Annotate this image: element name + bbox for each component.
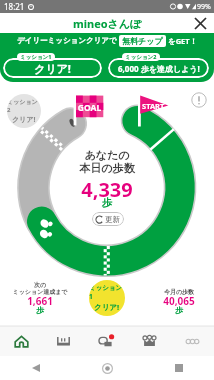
staticText: クリア! [12,115,36,125]
button[interactable]: ミッション1 [89,280,125,316]
button[interactable]: More [171,326,214,356]
button[interactable]: 6,000 歩を達成しよう! [108,58,209,78]
staticText: GOAL [76,102,103,114]
button[interactable]: Information [191,92,207,108]
staticText: 6,000 歩を達成しよう! [118,63,200,74]
staticText: 歩 [5,305,75,315]
staticText: 歩 [56,196,158,209]
staticText: 今月の歩数 [144,288,214,296]
staticText: 4,339 [56,176,158,203]
staticText: をGET！ [168,36,198,46]
staticText: ミッション2 [125,53,157,61]
staticText: 18:21 [4,1,25,12]
button[interactable]: クリア! [3,58,102,78]
staticText: 無料チップ [122,36,163,46]
staticText: クリア! [94,302,120,312]
staticText: ミッション達成まで [5,288,75,296]
other: Home [102,363,113,374]
button[interactable]: Home [0,326,42,356]
staticText: 歩 [144,305,214,315]
staticText: START [142,101,165,111]
staticText: 次の [5,281,75,289]
staticText: ミッション1 [89,284,125,301]
staticText: 40,065 [144,294,214,308]
staticText: 1,661 [5,294,75,308]
staticText: 99% [197,2,211,12]
other: Back [32,364,40,372]
button[interactable]: Chat [85,326,128,356]
staticText: ミッション2 [7,98,41,114]
staticText: クリア! [34,61,71,76]
button[interactable]: Rewards [128,326,171,356]
staticText: 更新 [105,215,120,224]
staticText: 本日の歩数 [56,161,158,175]
button[interactable]: Data [42,326,85,356]
button[interactable]: 更新 [92,212,124,226]
button[interactable]: Close [191,14,209,32]
staticText: mineoさんぽ [73,16,142,31]
staticText: ミッション1 [20,53,52,61]
staticText: デイリーミッションクリアで [17,36,117,45]
staticText: あなたの [56,148,158,162]
